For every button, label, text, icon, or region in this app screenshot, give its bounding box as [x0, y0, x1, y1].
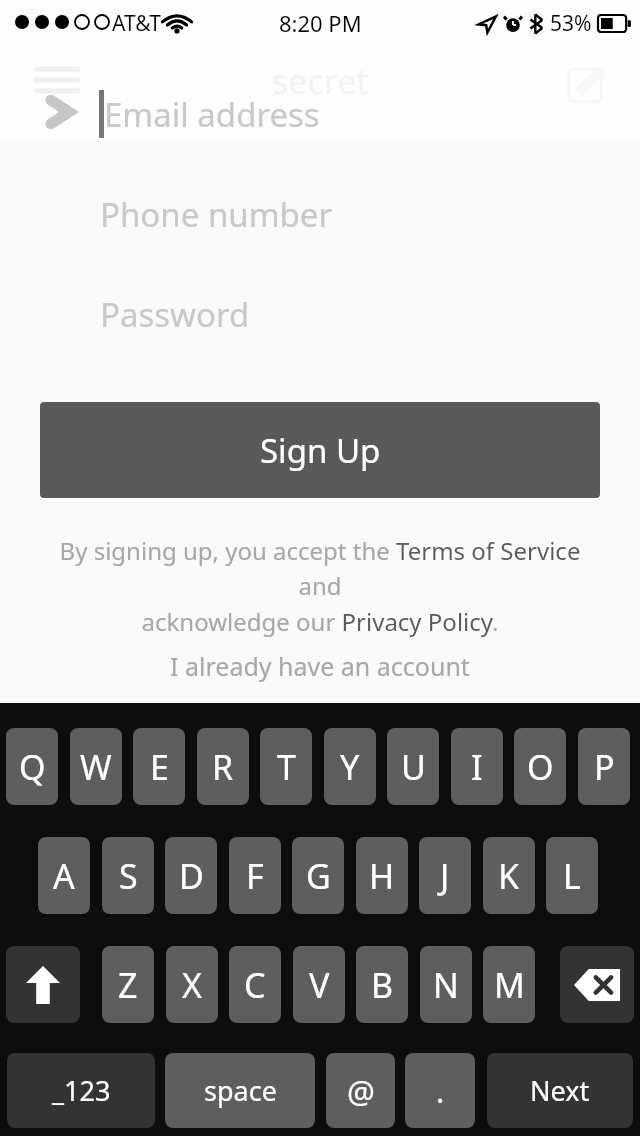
- staticText: S: [119, 853, 138, 899]
- button[interactable]: Y: [324, 728, 376, 805]
- button[interactable]: S: [102, 837, 154, 914]
- staticText: _123: [52, 1072, 111, 1109]
- staticText: J: [440, 853, 450, 899]
- button[interactable]: P: [578, 728, 630, 805]
- button[interactable]: V: [293, 946, 345, 1023]
- staticText: Q: [19, 744, 46, 790]
- staticText: 8:20 PM: [279, 8, 362, 38]
- button[interactable]: H: [356, 837, 408, 914]
- button[interactable]: Password: [0, 288, 640, 340]
- staticText: Password: [100, 292, 250, 337]
- button[interactable]: T: [260, 728, 312, 805]
- button[interactable]: J: [419, 837, 471, 914]
- staticText: W: [80, 744, 112, 790]
- staticText: Z: [118, 962, 138, 1008]
- staticText: N: [433, 962, 459, 1008]
- button[interactable]: R: [197, 728, 249, 805]
- staticText: Next: [530, 1072, 590, 1109]
- staticText: Email address: [104, 92, 320, 137]
- button[interactable]: Q: [6, 728, 58, 805]
- staticText: Sign Up: [260, 428, 381, 473]
- staticText: C: [244, 962, 266, 1008]
- button[interactable]: Next: [487, 1053, 633, 1128]
- button[interactable]: M: [483, 946, 535, 1023]
- staticText: Phone number: [100, 192, 333, 237]
- button[interactable]: By signing up, you accept the Terms of S…: [54, 534, 586, 638]
- staticText: R: [212, 744, 234, 790]
- button[interactable]: Shift: [6, 946, 80, 1023]
- staticText: B: [371, 962, 394, 1008]
- button[interactable]: X: [166, 946, 218, 1023]
- staticText: M: [494, 962, 525, 1008]
- button[interactable]: W: [70, 728, 122, 805]
- button[interactable]: A: [38, 837, 90, 914]
- staticText: L: [563, 853, 581, 899]
- staticText: G: [306, 853, 331, 899]
- button[interactable]: @: [326, 1053, 395, 1128]
- button[interactable]: G: [292, 837, 344, 914]
- button[interactable]: _123: [7, 1053, 155, 1128]
- staticText: He is a legend: [227, 520, 413, 558]
- button[interactable]: L: [546, 837, 598, 914]
- button[interactable]: I: [451, 728, 503, 805]
- staticText: AT&T: [112, 9, 161, 38]
- staticText: secret: [272, 58, 369, 104]
- button[interactable]: Next: [34, 86, 86, 138]
- staticText: space: [204, 1072, 277, 1109]
- button[interactable]: Phone number: [0, 188, 640, 240]
- staticText: H: [369, 853, 395, 899]
- button[interactable]: K: [483, 837, 535, 914]
- button[interactable]: Sign Up: [40, 402, 600, 498]
- staticText: I: [471, 744, 483, 790]
- button[interactable]: D: [165, 837, 217, 914]
- button[interactable]: U: [387, 728, 439, 805]
- button[interactable]: N: [420, 946, 472, 1023]
- button[interactable]: Z: [102, 946, 154, 1023]
- staticText: I already have an account: [170, 649, 470, 683]
- staticText: V: [309, 962, 330, 1008]
- staticText: .: [436, 1070, 445, 1112]
- staticText: O: [527, 744, 554, 790]
- button[interactable]: C: [229, 946, 281, 1023]
- button[interactable]: Backspace: [560, 946, 634, 1023]
- staticText: U: [401, 744, 426, 790]
- staticText: E: [150, 744, 169, 790]
- staticText: F: [246, 853, 264, 899]
- staticText: X: [182, 962, 202, 1008]
- staticText: T: [277, 744, 296, 790]
- button[interactable]: space: [165, 1053, 315, 1128]
- button[interactable]: B: [356, 946, 408, 1023]
- button[interactable]: Email address: [0, 88, 640, 140]
- staticText: Y: [340, 744, 360, 790]
- button[interactable]: .: [405, 1053, 475, 1128]
- button[interactable]: I already have an account: [0, 640, 640, 692]
- button[interactable]: O: [514, 728, 566, 805]
- staticText: A: [53, 853, 75, 899]
- staticText: P: [594, 744, 615, 790]
- button[interactable]: F: [229, 837, 281, 914]
- staticText: D: [179, 853, 204, 899]
- staticText: @: [347, 1070, 375, 1112]
- staticText: 53%: [550, 9, 592, 38]
- button[interactable]: E: [133, 728, 185, 805]
- staticText: K: [498, 853, 520, 899]
